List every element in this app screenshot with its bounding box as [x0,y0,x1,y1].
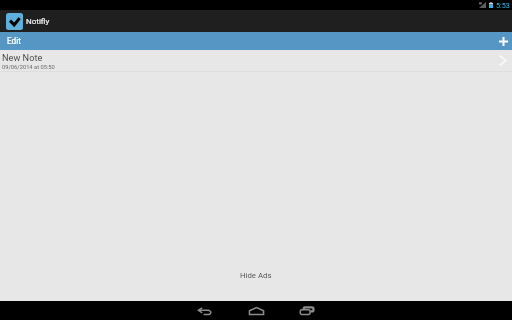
other: Open note [500,56,506,65]
button[interactable]: New Note [0,50,512,72]
staticText: New Note [2,52,43,63]
staticText: Edit [7,36,21,46]
staticText: 09/06/2014 at 05:50 [2,64,55,71]
button[interactable]: Recent apps [290,301,324,320]
button[interactable]: Hide Ads [235,269,277,282]
button[interactable]: Home [239,301,273,320]
staticText: 5:53 [496,1,510,9]
button[interactable]: Back [188,301,222,320]
button[interactable]: Edit [0,32,27,50]
button[interactable]: Add note [494,32,512,50]
staticText: Notifly [26,17,50,26]
button[interactable]: Notifly home [6,13,50,30]
staticText: Hide Ads [240,271,272,280]
